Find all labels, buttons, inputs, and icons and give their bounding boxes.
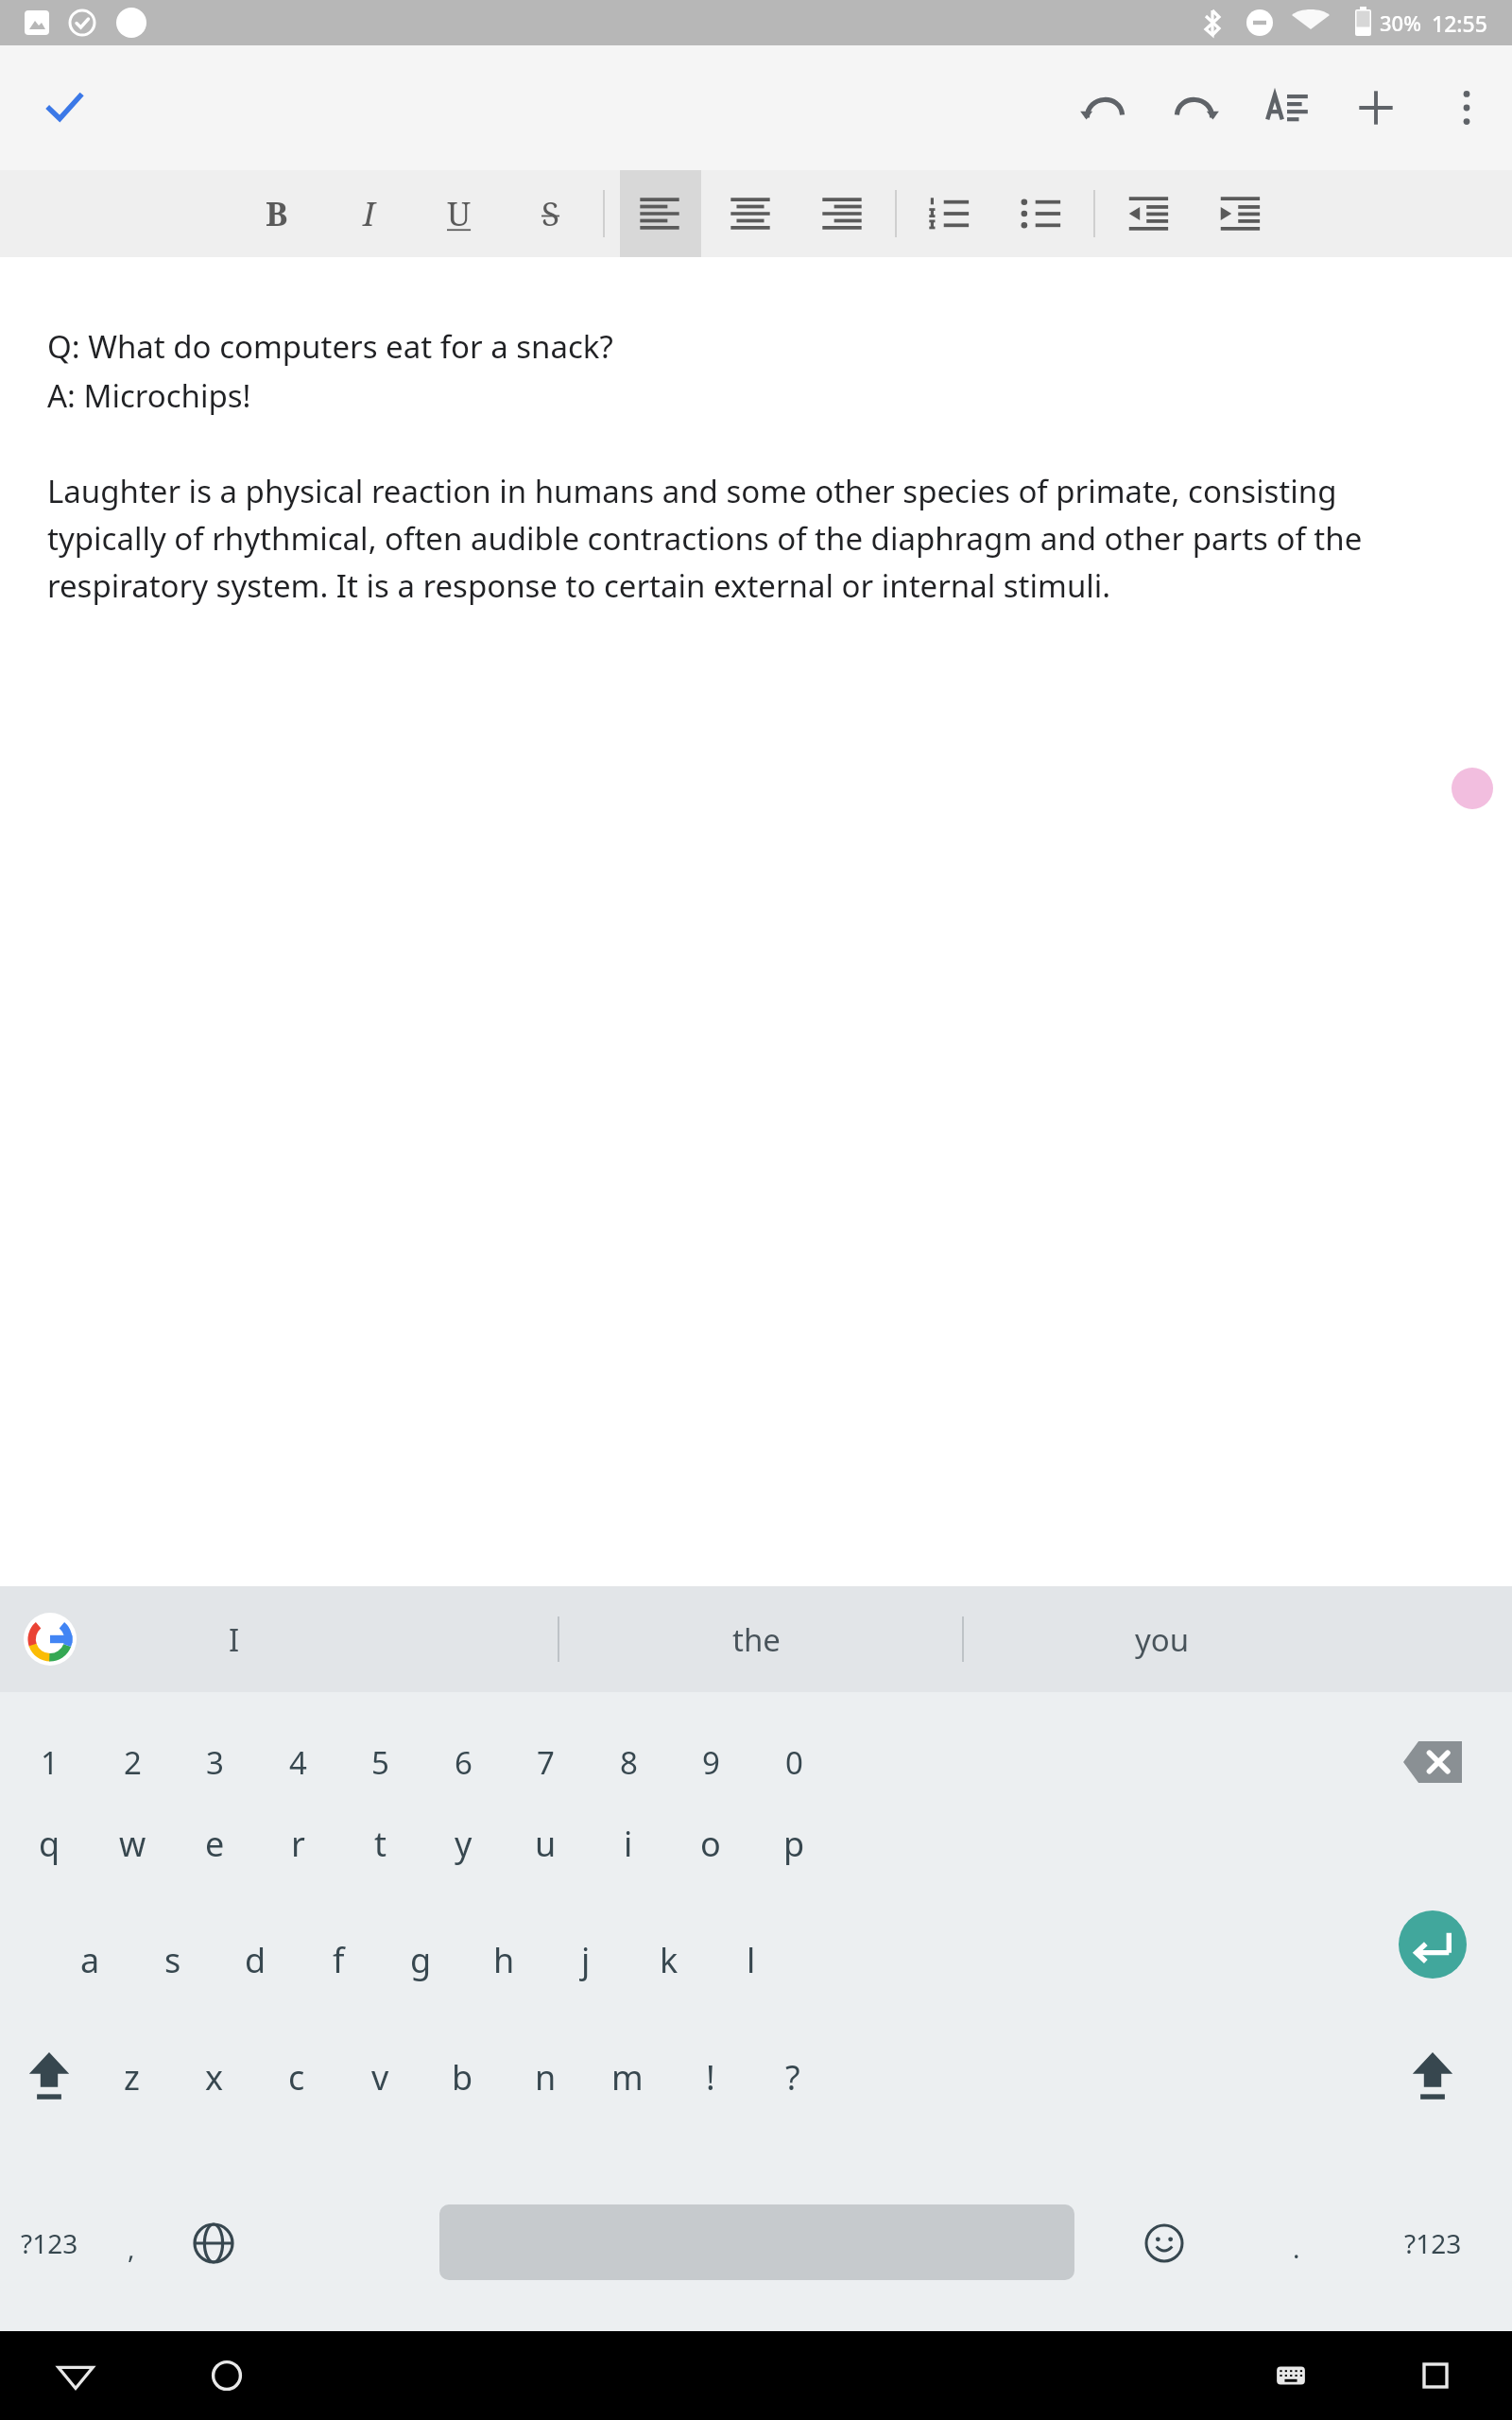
button[interactable]: 0 [753,1719,834,1806]
button[interactable]: a [49,1916,130,2003]
staticText: B [266,191,288,236]
button[interactable]: Numbered list [908,170,989,257]
staticText: l [747,1937,756,1983]
staticText: q [39,1821,60,1867]
staticText: j [581,1937,591,1983]
button[interactable]: Comma [84,2204,179,2291]
button[interactable]: Shift [8,2033,91,2120]
button[interactable]: Recent apps [1391,2331,1480,2420]
staticText: you [1135,1618,1190,1661]
button[interactable]: s [132,1916,214,2003]
button[interactable]: w [92,1800,173,1887]
staticText: h [493,1937,515,1983]
button[interactable]: y [422,1800,504,1887]
button[interactable]: Align center [710,170,791,257]
button[interactable]: Space [439,2204,1074,2280]
button[interactable]: the [586,1586,926,1692]
button[interactable]: f [298,1916,379,2003]
button[interactable]: Change language [172,2202,255,2285]
button[interactable]: 7 [505,1719,586,1806]
button[interactable]: i [588,1800,669,1887]
button[interactable]: Align right [801,170,883,257]
button[interactable]: Emoji [1123,2202,1206,2285]
button[interactable]: Switch keyboard [1246,2331,1335,2420]
button[interactable]: p [753,1800,834,1887]
staticText: 8 [620,1741,638,1784]
button[interactable]: Bulleted list [1000,170,1081,257]
button[interactable]: Bold [236,170,318,257]
staticText: Laughter is a physical reaction in human… [47,470,1417,607]
staticText: y [455,1821,472,1867]
button[interactable]: m [587,2033,668,2120]
staticText: 30% [1380,9,1421,37]
button[interactable]: k [628,1916,710,2003]
button[interactable]: 8 [588,1719,669,1806]
staticText: 7 [537,1741,555,1784]
button[interactable]: Google search [13,1602,87,1676]
button[interactable]: Align left [619,170,700,257]
button[interactable]: v [339,2033,421,2120]
button[interactable]: o [670,1800,751,1887]
button[interactable]: Redo [1154,66,1237,149]
button[interactable]: 3 [174,1719,255,1806]
staticText: 2 [124,1741,142,1784]
button[interactable]: Text formatting [1246,66,1329,149]
button[interactable]: n [505,2033,586,2120]
button[interactable]: Backspace [1376,1719,1489,1806]
button[interactable]: z [91,2033,172,2120]
button[interactable]: Strikethrough [510,170,592,257]
button[interactable]: Symbols [1385,2200,1480,2287]
staticText: d [245,1937,266,1983]
button[interactable]: l [711,1916,792,2003]
button[interactable]: Italic [328,170,409,257]
staticText: I [229,1618,240,1661]
staticText: 0 [785,1741,803,1784]
staticText: I [363,191,375,236]
button[interactable]: Add [1334,66,1417,149]
staticText: S [541,191,560,236]
button[interactable]: c [256,2033,337,2120]
button[interactable]: x [174,2033,255,2120]
button[interactable]: I [64,1586,404,1692]
button[interactable]: 9 [670,1719,751,1806]
button[interactable]: Decrease indent [1108,170,1189,257]
button[interactable]: ! [670,2033,751,2120]
staticText: n [535,2054,557,2100]
button[interactable]: u [505,1800,586,1887]
button[interactable]: Undo [1062,66,1145,149]
button[interactable]: 2 [92,1719,173,1806]
button[interactable]: q [9,1800,90,1887]
button[interactable]: 1 [9,1719,90,1806]
button[interactable]: e [174,1800,255,1887]
button[interactable]: Period [1249,2204,1344,2291]
button[interactable]: Increase indent [1199,170,1280,257]
staticText: ?123 [21,2225,78,2261]
staticText: , [128,2230,135,2266]
button[interactable]: t [339,1800,421,1887]
button[interactable]: h [463,1916,544,2003]
button[interactable]: j [545,1916,627,2003]
button[interactable]: Underline [419,170,500,257]
button[interactable]: 5 [339,1719,421,1806]
button[interactable]: b [421,2033,503,2120]
staticText: f [333,1937,345,1983]
staticText: c [288,2054,305,2100]
button[interactable]: Back [31,2331,120,2420]
button[interactable]: Symbols [2,2200,96,2287]
button[interactable]: 6 [422,1719,504,1806]
button[interactable]: r [257,1800,338,1887]
button[interactable]: Home [182,2331,271,2420]
staticText: i [624,1821,633,1867]
button[interactable]: ? [752,2033,833,2120]
staticText: Q: What do computers eat for a snack? [47,325,613,368]
button[interactable]: Enter [1381,1893,1485,1996]
button[interactable]: More options [1425,66,1508,149]
button[interactable]: you [992,1586,1332,1692]
button[interactable]: Q: What do computers eat for a snack? [0,257,1512,1586]
button[interactable]: 4 [257,1719,338,1806]
button[interactable]: Caps lock [1391,2033,1474,2120]
button[interactable]: g [380,1916,461,2003]
button[interactable]: d [215,1916,296,2003]
staticText: . [1293,2230,1300,2266]
button[interactable]: Done [19,62,110,153]
